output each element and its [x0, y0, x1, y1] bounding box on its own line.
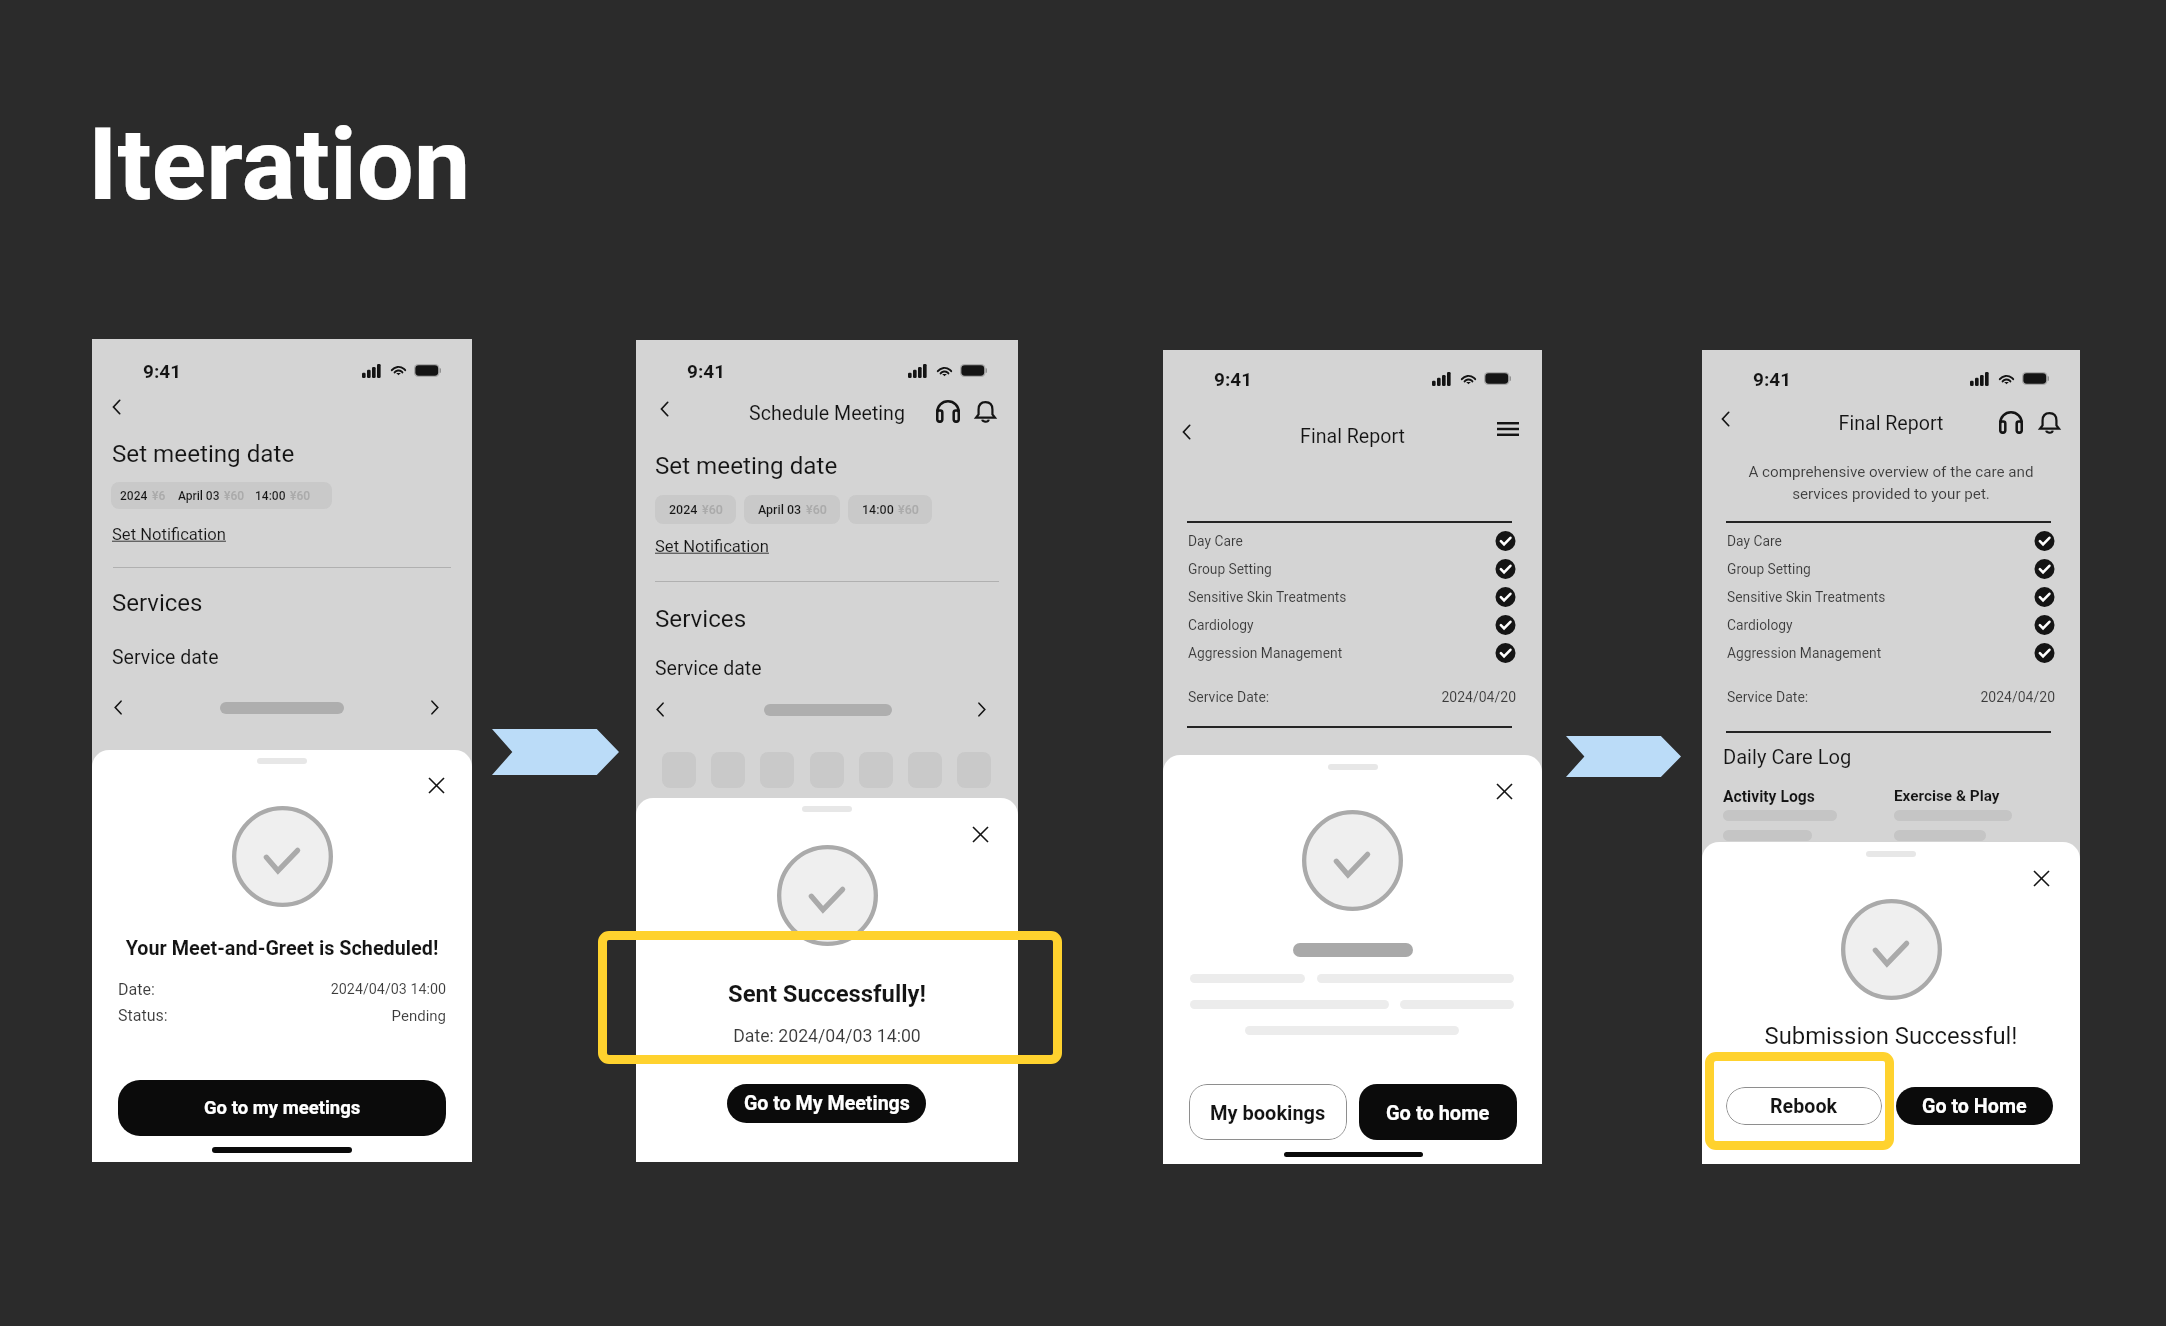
- button[interactable]: Set Notification: [655, 532, 769, 551]
- staticText: Services: [112, 589, 203, 617]
- button[interactable]: Cardiology: [1188, 615, 1516, 635]
- staticText: 2024/04/20: [1945, 689, 2055, 705]
- staticText: Go to my meetings: [204, 1097, 361, 1119]
- staticText: Group Setting: [1727, 561, 1811, 577]
- button[interactable]: Go to Home: [1896, 1087, 2053, 1125]
- staticText: Go to home: [1386, 1101, 1490, 1124]
- staticText: April 03: [178, 489, 220, 503]
- staticText: Service Date:: [1188, 689, 1270, 705]
- staticText: Go to Home: [1922, 1095, 2027, 1118]
- button[interactable]: Next: [424, 697, 445, 718]
- staticText: Set meeting date: [112, 440, 295, 468]
- button[interactable]: Next: [971, 699, 992, 720]
- staticText: 9:41: [143, 360, 182, 382]
- staticText: Rebook: [1770, 1095, 1838, 1118]
- button[interactable]: Set Notification: [112, 520, 226, 539]
- button[interactable]: Go to My Meetings: [727, 1084, 926, 1123]
- staticText: Sent Successfully!: [636, 980, 1018, 1008]
- staticText: 2024: [669, 502, 698, 517]
- button[interactable]: My bookings: [1189, 1084, 1347, 1140]
- staticText: Aggression Management: [1727, 645, 1882, 661]
- staticText: ¥6: [152, 489, 166, 503]
- staticText: ¥60: [702, 502, 723, 517]
- staticText: Daily Care Log: [1723, 745, 1852, 769]
- staticText: 9:41: [1214, 368, 1253, 390]
- staticText: Day Care: [1188, 533, 1243, 549]
- button[interactable]: Close: [968, 822, 992, 846]
- button[interactable]: Support: [936, 400, 960, 423]
- button[interactable]: Back: [106, 396, 128, 418]
- button[interactable]: Aggression Management: [1188, 643, 1516, 663]
- staticText: Final Report: [1163, 425, 1542, 448]
- button[interactable]: Close: [424, 773, 448, 797]
- staticText: Cardiology: [1188, 617, 1254, 633]
- staticText: Activity Logs: [1723, 787, 1815, 805]
- staticText: A comprehensive overview of the care and…: [1724, 463, 2058, 503]
- button[interactable]: Day Care: [1727, 531, 2055, 551]
- button[interactable]: Go to home: [1359, 1084, 1517, 1140]
- staticText: Go to My Meetings: [744, 1092, 910, 1115]
- staticText: ¥60: [290, 489, 311, 503]
- staticText: Service date: [655, 657, 762, 680]
- staticText: 2024/04/20: [1406, 689, 1516, 705]
- staticText: Day Care: [1727, 533, 1782, 549]
- button[interactable]: Previous: [108, 697, 129, 718]
- button[interactable]: Cardiology: [1727, 615, 2055, 635]
- button[interactable]: Aggression Management: [1727, 643, 2055, 663]
- button[interactable]: Menu: [1497, 414, 1519, 444]
- button[interactable]: Group Setting: [1727, 559, 2055, 579]
- staticText: April 03: [758, 502, 802, 517]
- button[interactable]: Notifications: [2039, 411, 2060, 435]
- button[interactable]: Notifications: [975, 400, 996, 424]
- button[interactable]: Back: [1176, 421, 1198, 443]
- staticText: ¥60: [898, 502, 919, 517]
- button[interactable]: 2024: [655, 495, 736, 524]
- button[interactable]: April 03: [744, 495, 840, 524]
- staticText: Iteration: [88, 105, 471, 223]
- staticText: ¥60: [806, 502, 827, 517]
- button[interactable]: Group Setting: [1188, 559, 1516, 579]
- button[interactable]: Previous: [650, 699, 671, 720]
- staticText: Services: [655, 605, 747, 633]
- button[interactable]: Sensitive Skin Treatments: [1727, 587, 2055, 607]
- staticText: Pending: [326, 1007, 446, 1025]
- button[interactable]: Go to my meetings: [118, 1080, 446, 1136]
- staticText: Exercise & Play: [1894, 787, 2000, 805]
- staticText: Status:: [118, 1006, 168, 1025]
- staticText: 14:00: [862, 502, 894, 517]
- staticText: Sensitive Skin Treatments: [1188, 589, 1347, 605]
- staticText: ¥60: [224, 489, 245, 503]
- staticText: 2024: [120, 489, 148, 503]
- staticText: Service Date:: [1727, 689, 1809, 705]
- staticText: 2024/04/03 14:00: [276, 981, 446, 998]
- staticText: 9:41: [1753, 368, 1792, 390]
- staticText: Your Meet-and-Greet is Scheduled!: [92, 937, 472, 960]
- button[interactable]: Support: [1999, 411, 2023, 434]
- button[interactable]: Close: [2029, 866, 2053, 890]
- staticText: Group Setting: [1188, 561, 1272, 577]
- button[interactable]: Day Care: [1188, 531, 1516, 551]
- staticText: Final Report: [1702, 412, 2080, 435]
- button[interactable]: Sensitive Skin Treatments: [1188, 587, 1516, 607]
- button[interactable]: 14:00: [848, 495, 932, 524]
- button[interactable]: Back: [1715, 408, 1737, 430]
- staticText: Set Notification: [655, 537, 769, 556]
- staticText: Set Notification: [112, 525, 226, 544]
- button[interactable]: Back: [654, 398, 676, 420]
- staticText: Date: 2024/04/03 14:00: [636, 1026, 1018, 1047]
- staticText: Schedule Meeting: [636, 402, 1018, 425]
- button[interactable]: 2024: [111, 482, 332, 509]
- button[interactable]: Rebook: [1726, 1087, 1882, 1125]
- staticText: Date:: [118, 980, 155, 999]
- staticText: Set meeting date: [655, 452, 838, 480]
- button[interactable]: Close: [1492, 779, 1516, 803]
- staticText: Service date: [112, 646, 219, 669]
- staticText: Cardiology: [1727, 617, 1793, 633]
